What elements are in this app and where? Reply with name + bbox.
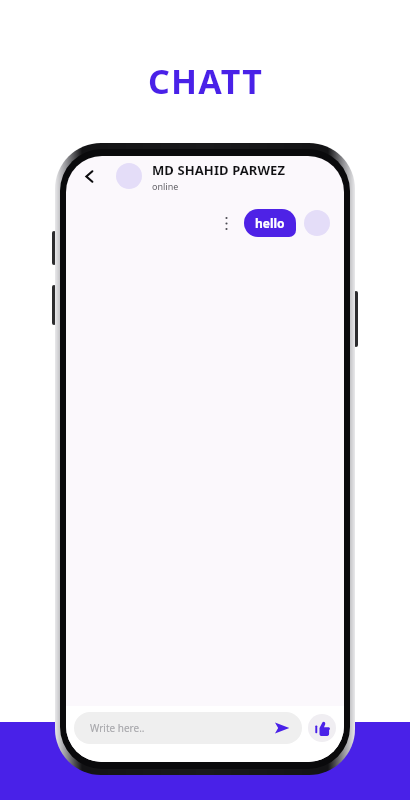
button[interactable]: Back — [76, 163, 102, 189]
staticText: MD SHAHID PARWEZ — [152, 161, 286, 179]
button[interactable]: Send — [272, 718, 292, 738]
button[interactable]: Profile photo — [116, 163, 142, 189]
button[interactable]: Message options — [219, 212, 233, 234]
button[interactable]: Write here.. — [74, 712, 302, 744]
staticText: online — [152, 180, 179, 192]
staticText: CHATT — [148, 58, 263, 104]
button[interactable]: hello — [244, 209, 296, 237]
staticText: hello — [255, 215, 285, 231]
button[interactable]: Send a like — [308, 714, 336, 742]
button[interactable]: Sender photo — [304, 210, 330, 236]
staticText: Write here.. — [90, 721, 272, 735]
